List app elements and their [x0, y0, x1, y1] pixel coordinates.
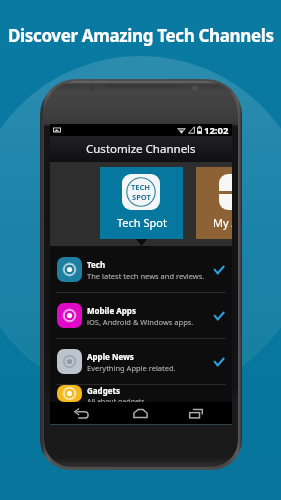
staticText: All about gadgets. — [87, 397, 147, 402]
staticText: TECH — [131, 182, 151, 192]
button[interactable]: Recent apps — [168, 402, 223, 424]
staticText: The latest tech news and reviews. — [87, 271, 205, 281]
button[interactable]: Apple News — [50, 339, 232, 384]
staticText: Tech — [87, 259, 106, 270]
staticText: My Apps — [213, 215, 232, 230]
staticText: 12:02 — [204, 124, 229, 136]
button[interactable]: My Apps — [196, 167, 232, 239]
button[interactable]: Tech — [50, 247, 232, 292]
staticText: SPOT — [132, 192, 151, 202]
other: Selected — [214, 358, 224, 366]
button[interactable]: Home — [113, 402, 168, 424]
staticText: Tech Spot — [117, 215, 167, 230]
staticText: Discover Amazing Tech Channels — [8, 24, 274, 47]
button[interactable]: TECH — [100, 167, 183, 239]
other: Selected — [214, 266, 224, 274]
button[interactable]: Back — [50, 402, 113, 424]
other: Selected — [214, 312, 224, 320]
staticText: Mobile Apps — [87, 305, 136, 316]
staticText: Gadgets — [87, 385, 120, 396]
button[interactable]: Mobile Apps — [50, 293, 232, 338]
staticText: Customize Channels — [86, 141, 196, 157]
staticText: Everything Apple related. — [87, 363, 176, 373]
button[interactable]: Gadgets — [50, 385, 232, 402]
staticText: iOS, Android & Windows apps. — [87, 317, 194, 327]
staticText: Apple News — [87, 351, 134, 362]
